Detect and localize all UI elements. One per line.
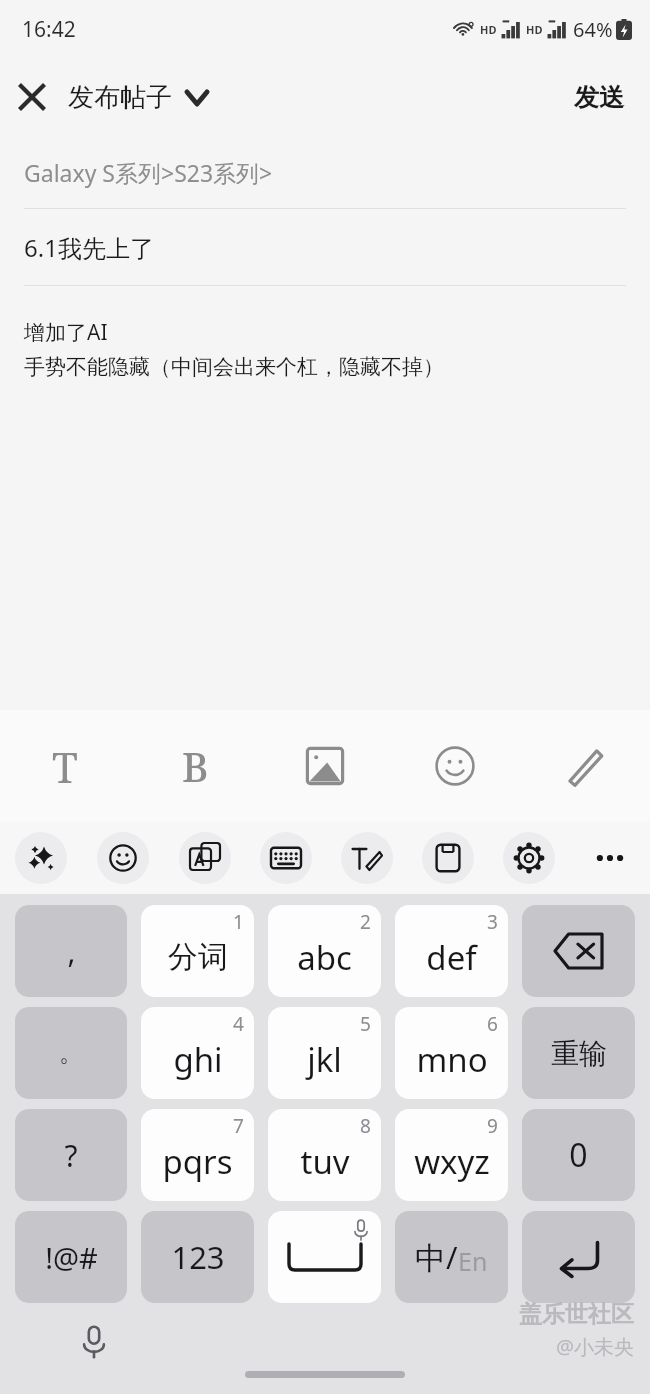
staticText: ghi xyxy=(173,1037,223,1082)
button[interactable]: !@# xyxy=(15,1211,127,1303)
button[interactable]: Enter xyxy=(522,1211,635,1303)
button[interactable]: 增加了AI xyxy=(24,318,650,380)
staticText: def xyxy=(426,935,477,980)
button[interactable]: B xyxy=(130,710,260,822)
staticText: 手势不能隐藏（中间会出来个杠，隐藏不掉） xyxy=(24,354,444,380)
staticText: 发布帖子 xyxy=(68,81,172,114)
staticText: 分词 xyxy=(168,938,228,976)
staticText: @小未央 xyxy=(556,1333,634,1360)
staticText: ? xyxy=(64,1135,78,1176)
staticText: Galaxy S系列>S23系列> xyxy=(24,157,273,188)
staticText: wxyz xyxy=(414,1139,490,1184)
button[interactable]: Voice input xyxy=(70,1318,118,1366)
staticText: 16:42 xyxy=(22,15,76,44)
button[interactable]: More xyxy=(569,822,650,894)
staticText: mno xyxy=(416,1037,488,1082)
button[interactable]: 中/ xyxy=(395,1211,508,1303)
button[interactable]: 123 xyxy=(141,1211,254,1303)
button[interactable]: 1 xyxy=(141,905,254,997)
staticText: , xyxy=(67,931,76,972)
staticText: 8 xyxy=(360,1113,371,1139)
staticText: 3 xyxy=(487,909,498,935)
staticText: 123 xyxy=(171,1236,225,1278)
staticText: B xyxy=(182,739,209,793)
button[interactable]: 5 xyxy=(268,1007,381,1099)
button[interactable]: 0 xyxy=(522,1109,635,1201)
button[interactable]: Delete xyxy=(522,905,635,997)
staticText: 5 xyxy=(360,1011,371,1037)
button[interactable]: 6 xyxy=(395,1007,508,1099)
staticText: 9 xyxy=(487,1113,498,1139)
button[interactable]: 2 xyxy=(268,905,381,997)
staticText: jkl xyxy=(307,1037,342,1082)
button[interactable]: 3 xyxy=(395,905,508,997)
staticText: 64% xyxy=(573,16,613,43)
button[interactable]: 发送 xyxy=(548,70,650,125)
button[interactable]: 4 xyxy=(141,1007,254,1099)
button[interactable]: Clipboard xyxy=(407,822,488,894)
button[interactable]: Handwriting xyxy=(326,822,407,894)
staticText: HD xyxy=(526,22,543,37)
staticText: 4 xyxy=(233,1011,244,1037)
staticText: 0 xyxy=(569,1133,588,1177)
button[interactable]: Settings xyxy=(488,822,569,894)
button[interactable]: T xyxy=(0,710,130,822)
staticText: 盖乐世社区 xyxy=(519,1300,634,1329)
button[interactable]: Keyboard xyxy=(245,822,326,894)
button[interactable]: , xyxy=(15,905,127,997)
button[interactable]: pen xyxy=(520,710,650,822)
button[interactable]: Emoji xyxy=(82,822,164,894)
button[interactable]: img xyxy=(260,710,390,822)
staticText: 6.1我先上了 xyxy=(24,231,154,264)
staticText: 1 xyxy=(233,909,244,935)
staticText: 7 xyxy=(233,1113,244,1139)
staticText: 。 xyxy=(59,1038,83,1068)
button[interactable]: 重输 xyxy=(522,1007,635,1099)
staticText: 2 xyxy=(360,909,371,935)
button[interactable]: ? xyxy=(15,1109,127,1201)
button[interactable]: Galaxy S系列>S23系列> xyxy=(0,136,650,208)
staticText: !@# xyxy=(45,1238,98,1277)
button[interactable]: emoji xyxy=(390,710,520,822)
button[interactable]: AI xyxy=(0,822,82,894)
button[interactable]: Space xyxy=(268,1211,381,1303)
button[interactable]: 发布帖子 xyxy=(64,73,212,122)
staticText: T xyxy=(52,738,78,795)
button[interactable]: Translate xyxy=(164,822,245,894)
staticText: abc xyxy=(297,935,352,980)
staticText: 增加了AI xyxy=(24,318,108,347)
staticText: 发送 xyxy=(574,82,624,113)
button[interactable]: 7 xyxy=(141,1109,254,1201)
button[interactable]: 9 xyxy=(395,1109,508,1201)
button[interactable]: 8 xyxy=(268,1109,381,1201)
staticText: 重输 xyxy=(551,1036,607,1071)
staticText: pqrs xyxy=(162,1139,233,1184)
button[interactable]: Close xyxy=(0,65,64,129)
staticText: HD xyxy=(480,22,497,37)
staticText: En xyxy=(458,1244,488,1278)
staticText: tuv xyxy=(300,1139,350,1184)
button[interactable]: 6.1我先上了 xyxy=(0,209,650,285)
button[interactable]: 。 xyxy=(15,1007,127,1099)
staticText: 中/ xyxy=(415,1236,458,1278)
staticText: 6 xyxy=(487,1011,498,1037)
